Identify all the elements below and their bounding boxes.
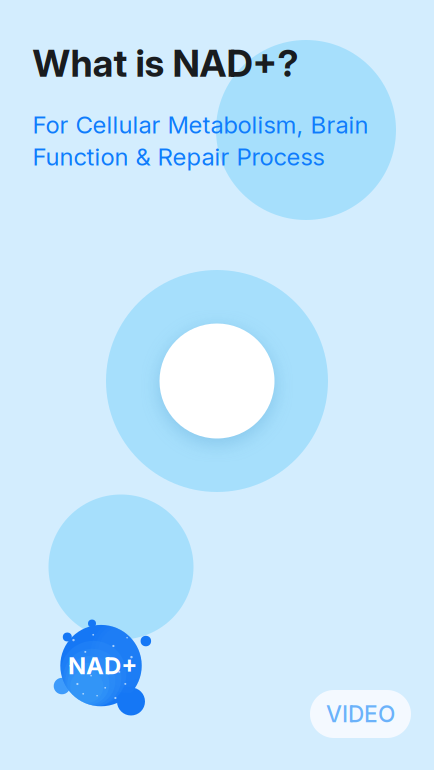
- staticText: What is NAD+?: [32, 40, 298, 86]
- staticText: Function & Repair Process: [32, 142, 324, 171]
- staticText: NAD+: [68, 651, 137, 680]
- staticText: VIDEO: [326, 700, 395, 728]
- button[interactable]: VIDEO: [310, 690, 411, 738]
- staticText: For Cellular Metabolism, Brain: [32, 110, 368, 139]
